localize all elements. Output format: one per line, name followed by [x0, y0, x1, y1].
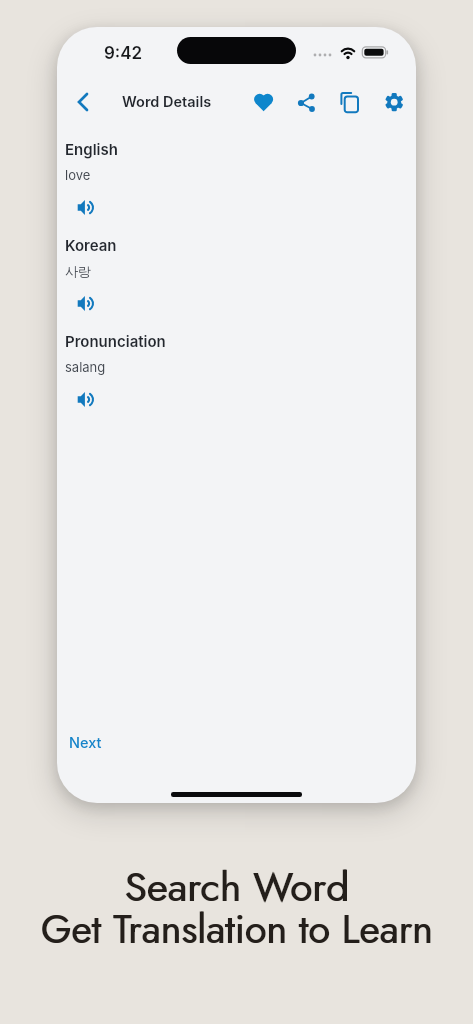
- button[interactable]: [74, 385, 99, 413]
- staticText: Get Translation to Learn: [0, 901, 473, 958]
- staticText: Search Word: [1, 858, 473, 917]
- staticText: Word Details: [122, 93, 212, 111]
- staticText: 9:42: [104, 43, 143, 64]
- staticText: Pronunciation: [65, 332, 166, 350]
- button[interactable]: [335, 87, 365, 117]
- staticText: English: [65, 140, 118, 158]
- button[interactable]: [74, 289, 99, 317]
- staticText: Search Word: [0, 858, 473, 917]
- staticText: Korean: [65, 236, 117, 254]
- staticText: salang: [65, 359, 106, 375]
- staticText: Next: [69, 734, 102, 752]
- button[interactable]: [294, 89, 320, 117]
- button[interactable]: [381, 89, 408, 116]
- button[interactable]: [69, 87, 97, 117]
- button[interactable]: Next: [63, 729, 123, 759]
- staticText: 사랑: [65, 263, 91, 279]
- staticText: love: [65, 167, 91, 183]
- button[interactable]: [74, 193, 99, 221]
- staticText: Get Translation to Learn: [1, 901, 473, 958]
- button[interactable]: [250, 89, 276, 116]
